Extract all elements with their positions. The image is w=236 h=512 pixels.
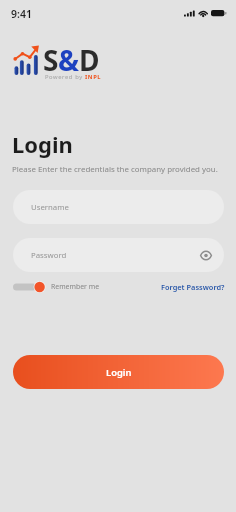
staticText: Remember me (51, 282, 100, 291)
staticText: Username (31, 202, 69, 213)
staticText: Login (12, 129, 73, 159)
staticText: Please Enter the credentials the company… (12, 164, 218, 175)
staticText: D (79, 41, 99, 79)
staticText: INPL (85, 73, 102, 81)
staticText: 9:41 (11, 7, 32, 21)
staticText: Forget Password? (161, 282, 225, 292)
button[interactable]: Login (13, 355, 224, 389)
staticText: S (43, 41, 58, 79)
button[interactable]: Remember me (13, 280, 100, 293)
staticText: Powered by (45, 73, 85, 81)
button[interactable]: Username (13, 190, 224, 224)
button[interactable]: Password (13, 238, 224, 272)
staticText: Login (106, 366, 132, 379)
staticText: & (58, 41, 79, 79)
button[interactable]: Forget Password? (161, 280, 225, 293)
staticText: Password (31, 250, 67, 261)
button[interactable]: Show password (198, 247, 214, 263)
